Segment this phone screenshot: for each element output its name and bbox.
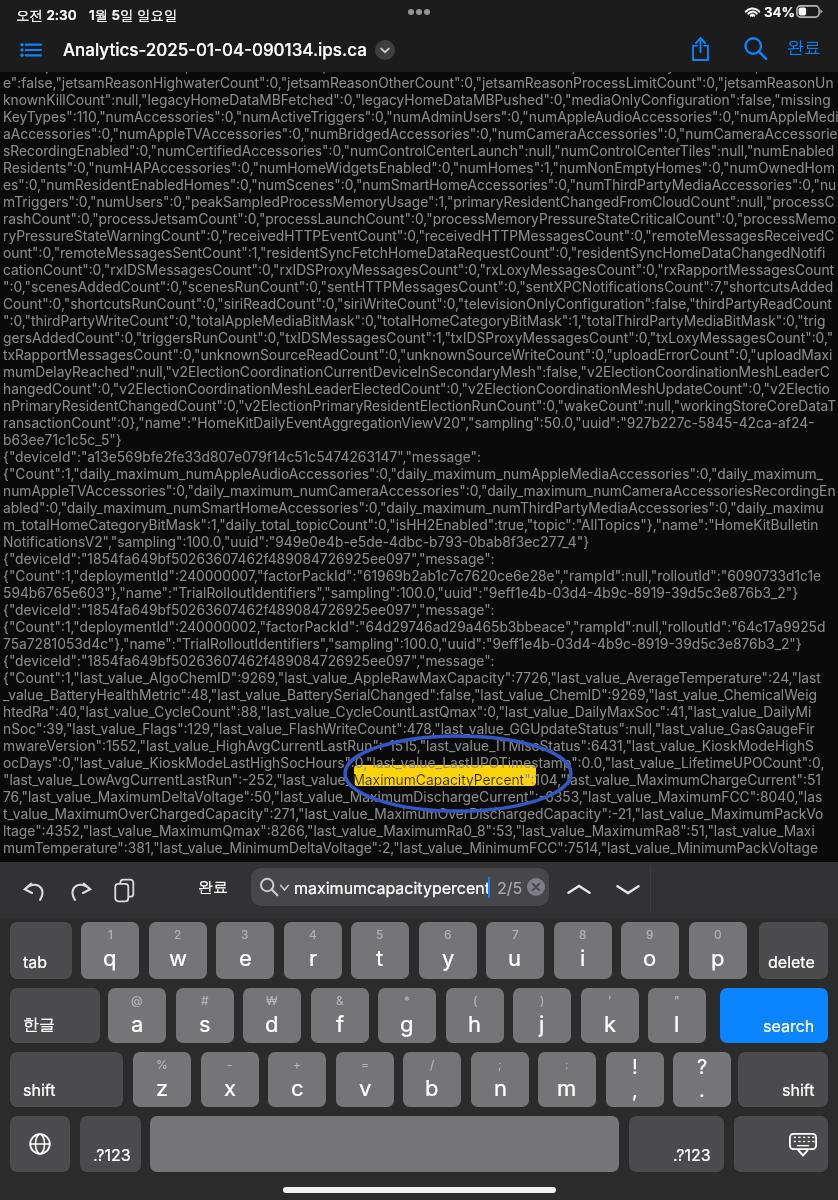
staticText: 594b6765e603"},"name":"TrialRolloutIdent…: [3, 585, 799, 602]
button[interactable]: ): [513, 988, 571, 1043]
button[interactable]: shift: [738, 1052, 828, 1107]
staticText: +: [293, 1057, 301, 1072]
button[interactable]: Search: [740, 33, 771, 64]
button[interactable]: Hide keyboard: [734, 1116, 828, 1172]
button[interactable]: 4: [284, 922, 342, 979]
button[interactable]: 3: [216, 922, 274, 979]
button[interactable]: Share: [684, 32, 716, 66]
staticText: f: [336, 1011, 345, 1038]
button[interactable]: 2: [149, 922, 207, 979]
staticText: ;: [498, 1057, 502, 1072]
button[interactable]: +: [268, 1052, 326, 1107]
button[interactable]: 6: [419, 922, 477, 979]
staticText: ': [608, 993, 612, 1008]
staticText: &: [336, 993, 344, 1008]
staticText: delete: [768, 952, 815, 971]
button[interactable]: 9: [621, 922, 679, 979]
button[interactable]: ?: [673, 1052, 731, 1107]
button[interactable]: 7: [486, 922, 544, 979]
button[interactable]: Show sidebar: [16, 38, 45, 62]
staticText: tab: [23, 952, 48, 971]
staticText: 완료: [198, 878, 228, 897]
staticText: (: [473, 993, 478, 1008]
button[interactable]: ;: [471, 1052, 529, 1107]
staticText: "last_value_LowAvgCurrentLastRun":-252,"…: [3, 772, 821, 789]
button[interactable]: Undo: [20, 871, 51, 909]
staticText: 1: [108, 927, 113, 942]
staticText: !: [632, 1055, 638, 1079]
staticText: umRequestedWriteCount":0,"isHH2Enabled":…: [3, 58, 838, 75]
staticText: q: [103, 945, 117, 972]
button[interactable]: (: [446, 988, 504, 1043]
button[interactable]: 한글: [10, 988, 100, 1043]
staticText: 오전 2:30: [16, 7, 77, 24]
button[interactable]: @: [108, 988, 166, 1043]
staticText: {"Count":1,"deploymentId":240000002,"fac…: [3, 619, 826, 636]
button[interactable]: tab: [10, 922, 72, 979]
button[interactable]: Document options: [375, 40, 395, 60]
staticText: 34%: [764, 4, 796, 20]
staticText: {"deviceId":"1854fa649bf50263607462f4890…: [3, 551, 495, 568]
staticText: aAccessories":0,"numAppleTVAccessories":…: [3, 126, 838, 143]
button[interactable]: 완료: [784, 34, 824, 61]
staticText: m_totalHomeCategoryBitMask":1,"daily_tot…: [3, 517, 819, 534]
staticText: b63ee71c1c5c_5"}: [3, 432, 122, 449]
button[interactable]: -: [201, 1052, 259, 1107]
button[interactable]: ": [648, 988, 706, 1043]
staticText: ,: [632, 1078, 638, 1102]
button[interactable]: #: [176, 988, 234, 1043]
staticText: ":0,"thirdPartyWriteCount":0,"totalApple…: [3, 313, 826, 330]
staticText: NotificationsV2","sampling":100.0,"uuid"…: [3, 534, 590, 551]
staticText: j: [539, 1011, 545, 1038]
button[interactable]: ₩: [243, 988, 301, 1043]
button[interactable]: Clear search: [527, 878, 545, 896]
staticText: sRecordingEnabled":0,"numCertifiedAccess…: [3, 143, 835, 160]
staticText: abled":0,"daily_maximum_numSmartHomeAcce…: [3, 500, 824, 517]
button[interactable]: %: [133, 1052, 191, 1107]
button[interactable]: *: [378, 988, 436, 1043]
button[interactable]: ': [581, 988, 639, 1043]
staticText: knownKillCount":null,"legacyHomeDataMBFe…: [3, 92, 831, 109]
staticText: .?123: [673, 1145, 711, 1164]
button[interactable]: 8: [554, 922, 612, 979]
button[interactable]: Switch keyboard: [10, 1116, 70, 1172]
staticText: ount":0,"remoteMessagesSentCount":1,"res…: [3, 245, 826, 262]
staticText: 75a7281053d4c"},"name":"TrialRolloutIden…: [3, 636, 802, 653]
button[interactable]: :: [538, 1052, 596, 1107]
button[interactable]: shift: [10, 1052, 123, 1107]
staticText: e: [239, 945, 252, 972]
staticText: hangedCount":0,"v2ElectionCoordinationMe…: [3, 381, 830, 398]
staticText: 5: [376, 927, 384, 942]
button[interactable]: 5: [351, 922, 409, 979]
button[interactable]: .?123: [80, 1116, 141, 1172]
button[interactable]: Paste: [108, 869, 141, 911]
staticText: 0: [714, 927, 722, 942]
staticText: t_value_MaximumOverChargedCapacity":271,…: [3, 806, 824, 823]
staticText: #: [201, 993, 209, 1008]
staticText: h: [468, 1011, 482, 1038]
button[interactable]: delete: [759, 922, 828, 979]
staticText: *: [404, 993, 411, 1008]
staticText: 완료: [787, 37, 821, 58]
button[interactable]: Next result: [611, 873, 644, 906]
staticText: search: [763, 1016, 815, 1035]
staticText: {"Count":1,"daily_maximum_numAppleAudioA…: [3, 466, 823, 483]
button[interactable]: 1: [81, 922, 139, 979]
staticText: ryPressureStateWarningCount":0,"received…: [3, 228, 835, 245]
button[interactable]: =: [336, 1052, 394, 1107]
button[interactable]: Redo: [64, 871, 95, 909]
staticText: gersAddedCount":0,"triggersRunCount":0,"…: [3, 330, 834, 347]
button[interactable]: 0: [689, 922, 747, 979]
staticText: l: [674, 1011, 680, 1038]
button[interactable]: 완료: [194, 876, 232, 899]
button[interactable]: .?123: [629, 1116, 724, 1172]
staticText: :: [565, 1057, 569, 1072]
button[interactable]: search: [720, 988, 828, 1043]
button[interactable]: &: [311, 988, 369, 1043]
staticText: a: [131, 1011, 144, 1038]
button[interactable]: Previous result: [562, 873, 595, 906]
button[interactable]: !: [606, 1052, 664, 1107]
button[interactable]: /: [403, 1052, 461, 1107]
button[interactable]: maximumcapacitypercent: [251, 868, 549, 906]
